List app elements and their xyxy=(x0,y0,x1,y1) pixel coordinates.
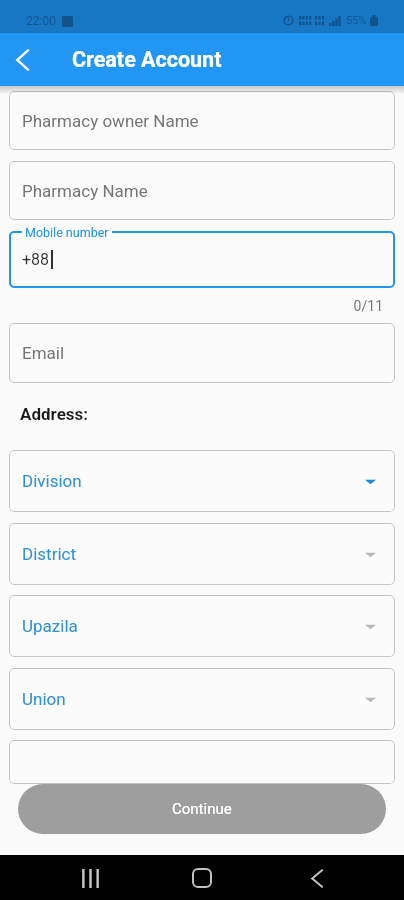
staticText: Mobile number xyxy=(25,225,109,240)
staticText: Upazila xyxy=(22,616,78,636)
staticText: District xyxy=(22,544,76,564)
staticText: Union xyxy=(22,689,66,709)
staticText: 0/11 xyxy=(9,298,383,314)
button[interactable]: Email xyxy=(9,323,395,383)
button[interactable]: Upazila xyxy=(9,595,395,657)
staticText: Pharmacy owner Name xyxy=(22,111,199,131)
button[interactable]: Division xyxy=(9,450,395,512)
button[interactable]: Pharmacy Name xyxy=(9,161,395,220)
staticText: +88 xyxy=(22,250,50,269)
button[interactable]: Back xyxy=(292,856,336,900)
button[interactable]: Home xyxy=(180,856,224,900)
button[interactable]: District xyxy=(9,523,395,585)
staticText: Address: xyxy=(20,404,89,424)
button[interactable]: Union xyxy=(9,668,395,730)
staticText: 55% xyxy=(346,14,367,27)
staticText: Division xyxy=(22,471,82,491)
staticText: Continue xyxy=(172,800,232,818)
staticText: Pharmacy Name xyxy=(22,181,148,201)
staticText: Create Account xyxy=(72,47,222,72)
button[interactable]: Back xyxy=(0,38,44,82)
button[interactable]: Recents xyxy=(68,856,112,900)
staticText: Email xyxy=(22,343,65,363)
button[interactable]: Continue xyxy=(18,784,386,834)
button[interactable]: +88 xyxy=(9,231,395,288)
staticText: 22:00 xyxy=(26,14,56,28)
button[interactable] xyxy=(9,740,395,784)
button[interactable]: Pharmacy owner Name xyxy=(9,91,395,150)
